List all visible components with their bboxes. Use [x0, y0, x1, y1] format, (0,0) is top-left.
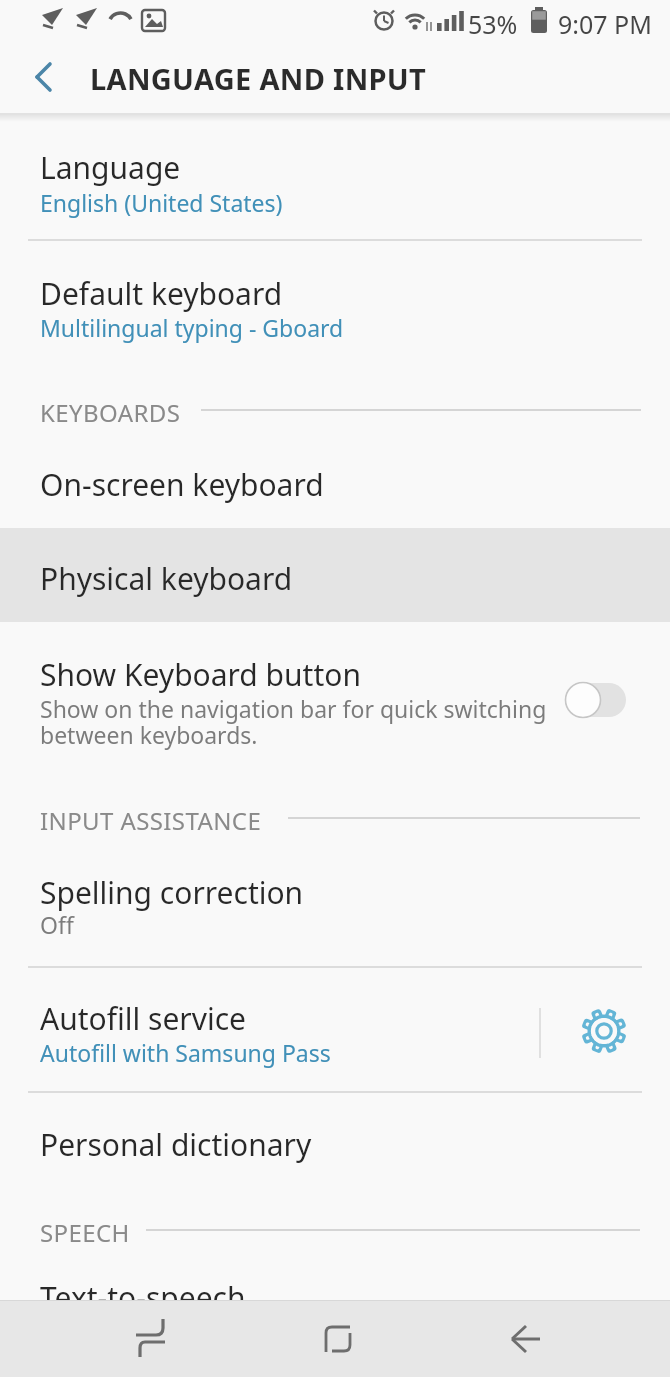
button[interactable]: Language [0, 115, 670, 240]
staticText: 53% [468, 7, 518, 41]
button[interactable] [303, 1302, 373, 1375]
button[interactable]: Autofill service [0, 968, 670, 1092]
button[interactable] [488, 1302, 558, 1375]
button[interactable]: Physical keyboard [0, 528, 670, 622]
button[interactable]: On-screen keyboard [0, 434, 670, 528]
button[interactable]: Text-to-speech [0, 1255, 670, 1300]
staticText: English (United States) [40, 187, 283, 218]
staticText: Multilingual typing - Gboard [40, 312, 344, 343]
staticText: On-screen keyboard [40, 464, 324, 505]
staticText: 9:07 PM [558, 7, 652, 41]
staticText: KEYBOARDS [40, 396, 181, 429]
button[interactable]: Spelling correction [0, 845, 670, 967]
staticText: Spelling correction [40, 872, 304, 913]
staticText: LANGUAGE AND INPUT [90, 59, 427, 98]
staticText: Autofill service [40, 998, 247, 1039]
staticText: Personal dictionary [40, 1124, 312, 1165]
staticText: Physical keyboard [40, 558, 293, 599]
staticText: Language [40, 147, 181, 188]
button[interactable]: Personal dictionary [0, 1093, 670, 1180]
button[interactable]: Default keyboard [0, 241, 670, 361]
button[interactable]: Show Keyboard button [0, 622, 670, 775]
staticText: Show on the navigation bar for quick swi… [40, 693, 547, 751]
button[interactable] [578, 1005, 630, 1057]
staticText: INPUT ASSISTANCE [40, 804, 262, 837]
staticText: Autofill with Samsung Pass [40, 1037, 331, 1068]
staticText: Show Keyboard button [40, 654, 361, 695]
staticText: Default keyboard [40, 273, 283, 314]
button[interactable] [0, 40, 90, 113]
staticText: Off [40, 909, 74, 940]
staticText: SPEECH [40, 1216, 130, 1249]
button[interactable] [116, 1302, 186, 1375]
staticText: Text-to-speech [40, 1277, 246, 1318]
